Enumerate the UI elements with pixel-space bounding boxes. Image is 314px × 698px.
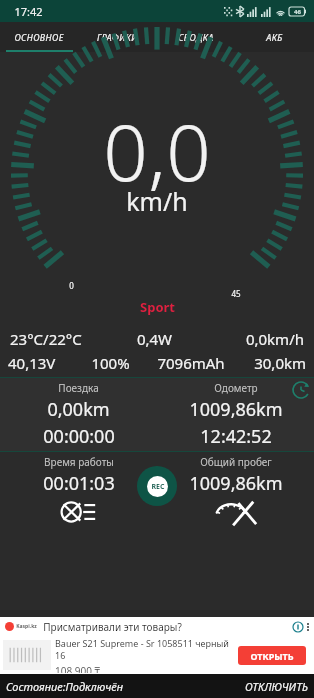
button[interactable]: СВОДКА: [156, 22, 235, 52]
staticText: REC: [151, 482, 165, 492]
button[interactable]: ОТКЛЮЧИТЬ: [239, 676, 314, 697]
staticText: 17:42: [14, 4, 43, 19]
staticText: 108 900 ₸: [55, 664, 100, 673]
button[interactable]: Reset trip history: [291, 380, 311, 400]
staticText: 12:42:52: [200, 424, 272, 449]
staticText: 0,4W: [110, 329, 199, 349]
staticText: 100%: [76, 353, 145, 373]
staticText: 30,0km: [237, 353, 306, 373]
staticText: Поездка: [58, 381, 99, 395]
staticText: ОТКРЫТЬ: [250, 650, 294, 662]
button[interactable]: Headlights off: [56, 496, 102, 528]
staticText: ,: [148, 98, 166, 204]
button[interactable]: Cruise control off: [212, 496, 260, 528]
staticText: ОСНОВНОЕ: [14, 31, 64, 43]
staticText: 1009,86km: [189, 397, 283, 422]
staticText: ГРАФИКИ: [97, 31, 138, 43]
staticText: АКБ: [266, 31, 283, 43]
staticText: 00:01:03: [43, 471, 115, 496]
staticText: 1009,86km: [189, 471, 283, 496]
staticText: СВОДКА: [178, 31, 214, 43]
staticText: 46: [294, 8, 301, 16]
staticText: 23°C/22°C: [10, 329, 110, 349]
button[interactable]: ГРАФИКИ: [78, 22, 156, 52]
staticText: Время работы: [44, 455, 114, 469]
staticText: Kaspi.kz: [16, 623, 37, 630]
staticText: ОТКЛЮЧИТЬ: [245, 679, 308, 694]
staticText: Состояние:Подключён: [6, 679, 123, 694]
button[interactable]: More options: [307, 623, 309, 631]
staticText: 45: [231, 288, 241, 299]
staticText: Общий пробег: [200, 455, 272, 469]
staticText: 7096mAh: [145, 353, 237, 373]
staticText: Bauer S21 Supreme - Sr 1058511 черный 16: [55, 637, 238, 661]
staticText: Присматривали эти товары?: [43, 620, 182, 634]
staticText: Одометр: [214, 381, 258, 395]
staticText: 0: [166, 98, 211, 204]
staticText: 40,13V: [8, 353, 76, 373]
button[interactable]: Record: [137, 466, 177, 506]
button[interactable]: АКБ: [235, 22, 314, 52]
staticText: 00:00:00: [43, 424, 115, 449]
staticText: km/h: [126, 184, 188, 218]
button[interactable]: Bauer S21 Supreme - Sr 1058511 черный 16: [3, 637, 311, 673]
staticText: 0: [103, 98, 148, 204]
staticText: Sport: [140, 298, 175, 316]
staticText: 0,00km: [47, 397, 110, 422]
button[interactable]: ОТКРЫТЬ: [238, 646, 306, 665]
button[interactable]: ОСНОВНОЕ: [0, 22, 78, 52]
staticText: 0: [69, 280, 74, 291]
staticText: 0,0km/h: [199, 329, 304, 349]
